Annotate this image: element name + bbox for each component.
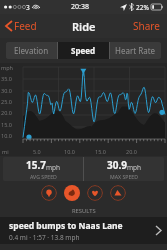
staticText: 5.0 [33, 148, 41, 155]
staticText: mi [2, 148, 9, 155]
staticText: Speed [71, 45, 96, 56]
staticText: speed bumps to Naas Lane [9, 220, 123, 232]
staticText: Share [133, 19, 160, 33]
staticText: MAX SPEED [110, 173, 138, 180]
staticText: Feed [14, 19, 37, 33]
button[interactable]: Activity [64, 185, 80, 201]
button[interactable]: Heart Rate [110, 42, 161, 59]
staticText: 20:38 [71, 2, 89, 12]
staticText: Heart Rate [115, 45, 156, 56]
staticText: Elevation [14, 45, 49, 56]
staticText: 30.9 [107, 158, 127, 172]
staticText: 35.0 [1, 75, 12, 82]
staticText: mph [46, 163, 61, 172]
staticText: 22% [136, 3, 149, 12]
staticText: 10.0 [1, 132, 12, 139]
staticText: 15.0 [95, 148, 106, 155]
button[interactable]: Share [130, 16, 163, 36]
staticText: 15.7 [26, 158, 46, 172]
staticText: 20.0 [1, 109, 12, 116]
staticText: 20.0 [126, 148, 137, 155]
button[interactable]: Elevation [6, 42, 57, 59]
staticText: mph [127, 163, 142, 172]
button[interactable]: Feed [4, 16, 39, 36]
button[interactable]: Photos [110, 185, 126, 201]
staticText: 3 [26, 3, 30, 12]
staticText: Ride [72, 19, 96, 34]
staticText: 15.0 [1, 121, 12, 128]
button[interactable]: 30.9 [84, 157, 164, 181]
button[interactable]: speed bumps to Naas Lane [0, 217, 167, 244]
button[interactable]: Segments [41, 185, 57, 201]
button[interactable]: Achievements [87, 185, 103, 201]
button[interactable]: 15.7 [3, 157, 83, 181]
staticText: AVG SPEED [30, 173, 57, 180]
staticText: 25.0 [1, 98, 12, 105]
staticText: RESULTS [72, 207, 96, 215]
staticText: 10.0 [64, 148, 75, 155]
staticText: mph [1, 64, 13, 71]
staticText: 30.0 [1, 87, 12, 94]
button[interactable]: Speed [58, 42, 109, 59]
staticText: 0.4 mi · 1:57 · 13.8 mph [9, 233, 80, 242]
